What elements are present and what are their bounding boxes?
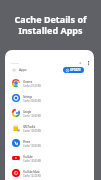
button[interactable]: More options (79, 60, 91, 66)
button[interactable]: SIM Toolkit (5, 120, 94, 135)
staticText: Google (23, 110, 31, 114)
staticText: Sort by (11, 61, 19, 64)
staticText: Apps (19, 68, 27, 72)
staticText: Cache: 130.00 KB (23, 159, 41, 163)
staticText: Cache: 300.00 KB (23, 99, 41, 103)
button[interactable]: YouTube Music (5, 165, 94, 180)
button[interactable]: Chrome (5, 75, 94, 90)
staticText: YouTube (23, 155, 33, 159)
staticText: Cache: 100.00 KB (23, 144, 41, 148)
staticText: Settings (23, 95, 32, 99)
staticText: Cache: 120.00 KB (23, 114, 41, 118)
button[interactable]: Google (5, 105, 94, 120)
staticText: UPDATE (70, 68, 81, 72)
staticText: YouTube Music (23, 170, 40, 174)
staticText: Cache Details of Installed Apps (0, 13, 101, 36)
staticText: Cache: 122.00 KB (23, 174, 41, 178)
button[interactable]: Phone (5, 135, 94, 150)
button[interactable]: YouTube (5, 150, 94, 165)
staticText: Phone (23, 140, 31, 144)
staticText: SIM Toolkit (23, 125, 35, 129)
staticText: Cache: 415.00 KB (23, 84, 41, 88)
staticText: Chrome (23, 80, 33, 84)
button[interactable]: UPDATE (63, 67, 84, 73)
staticText: Cache: 100.00 KB (23, 129, 41, 133)
button[interactable]: Settings (5, 90, 94, 105)
